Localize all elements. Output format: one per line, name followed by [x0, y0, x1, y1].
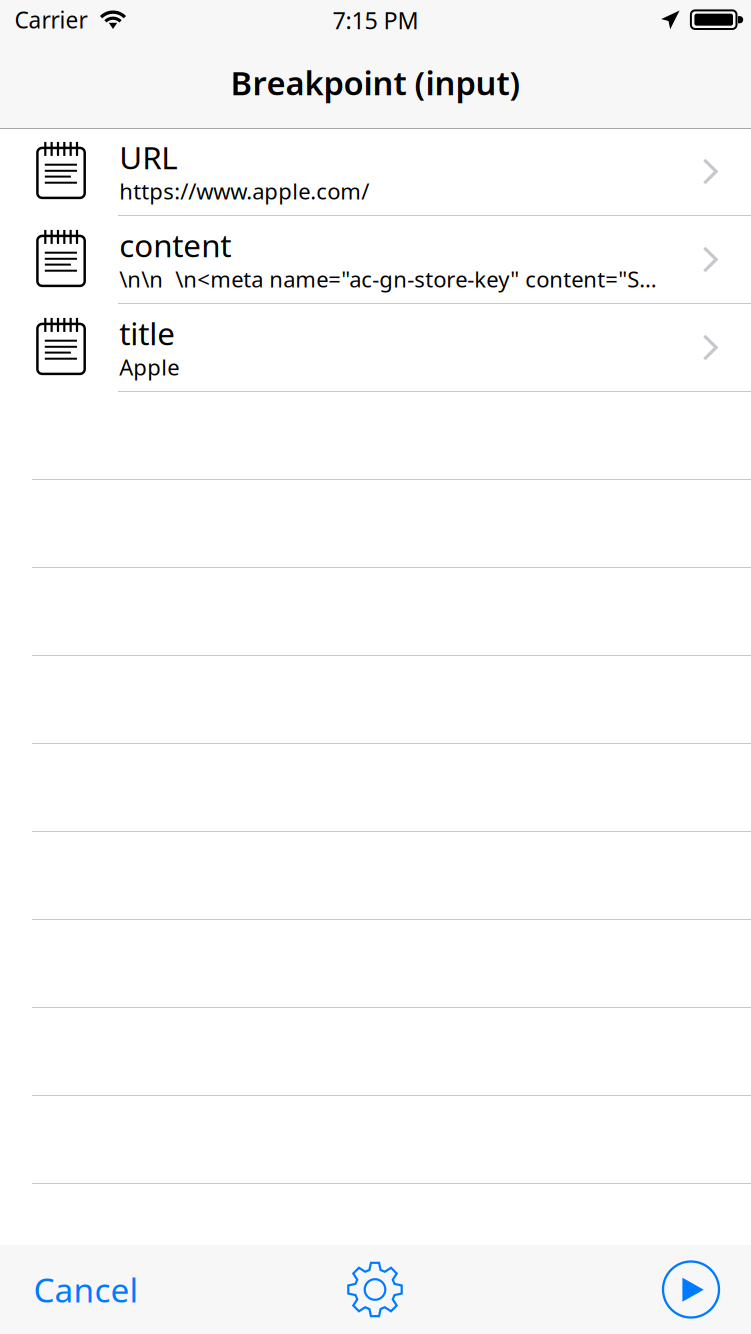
- staticText: \n\n \n<meta name="ac-gn-store-key" cont…: [119, 264, 656, 294]
- button[interactable]: Cancel: [24, 1245, 148, 1334]
- staticText: 7:15 PM: [332, 4, 418, 36]
- staticText: Apple: [119, 352, 179, 382]
- staticText: Breakpoint (input): [230, 60, 520, 105]
- staticText: URL: [119, 136, 177, 178]
- button[interactable]: content: [0, 216, 751, 304]
- button[interactable]: title: [0, 304, 751, 392]
- button[interactable]: Run: [647, 1245, 735, 1334]
- staticText: content: [119, 224, 231, 266]
- staticText: title: [119, 312, 175, 354]
- button[interactable]: Settings: [331, 1245, 419, 1334]
- button[interactable]: URL: [0, 128, 751, 216]
- staticText: https://www.apple.com/: [119, 176, 369, 206]
- staticText: Carrier: [14, 4, 87, 35]
- staticText: Cancel: [33, 1267, 138, 1312]
